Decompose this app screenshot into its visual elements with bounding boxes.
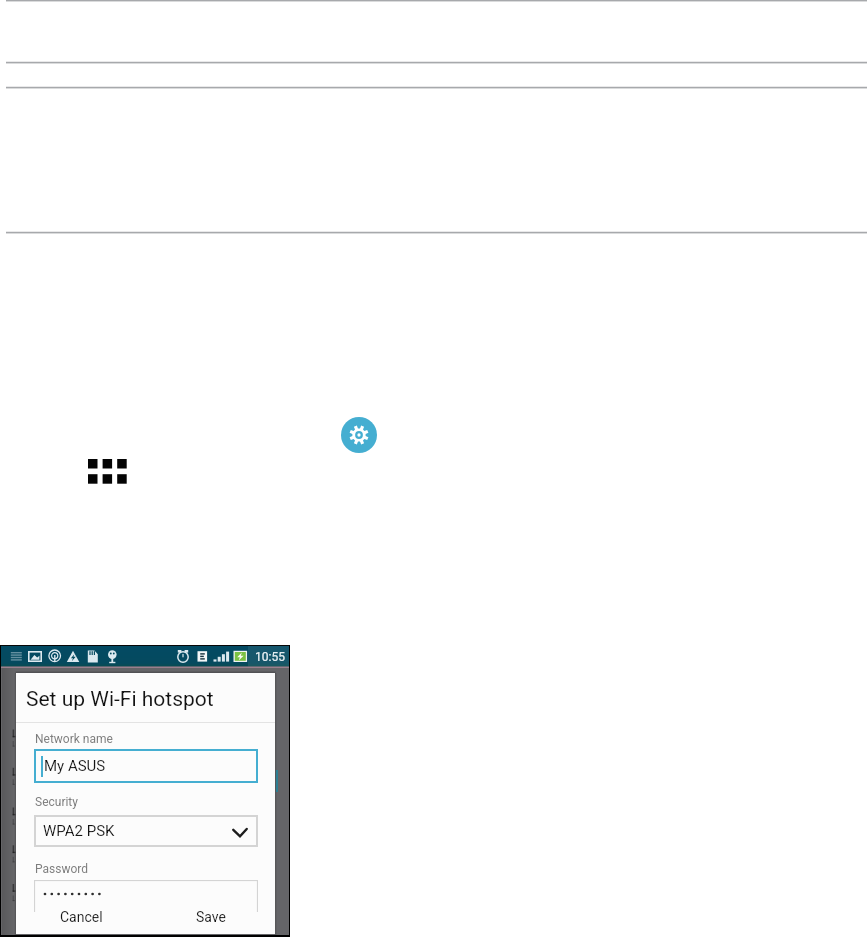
staticText: Cancel [60,909,103,925]
staticText: Save [196,909,226,925]
staticText: Password [35,862,89,876]
button[interactable]: Settings [341,417,377,453]
button[interactable]: Save [181,906,241,928]
staticText: Network name [35,732,113,746]
staticText: 10:55 [255,650,285,664]
staticText: Set up Wi-Fi hotspot [26,687,214,712]
button[interactable]: Cancel [51,906,111,928]
staticText: My ASUS [44,757,106,775]
button[interactable]: All apps [88,459,127,485]
staticText: Security [35,795,78,809]
staticText: WPA2 PSK [43,822,115,840]
